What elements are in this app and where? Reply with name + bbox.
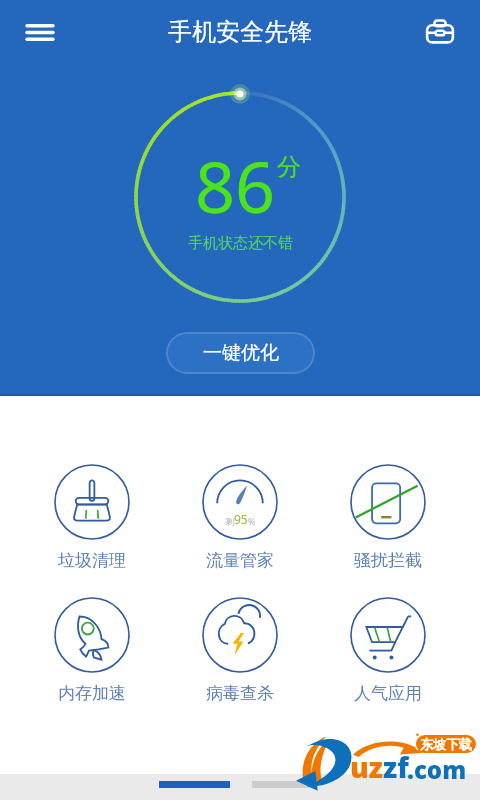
staticText: 东坡下载 <box>420 736 472 752</box>
button[interactable]: 垃圾清理 <box>30 464 154 574</box>
staticText: 病毒查杀 <box>206 683 274 704</box>
button[interactable]: 病毒查杀 <box>178 597 302 707</box>
staticText: 骚扰拦截 <box>354 550 422 571</box>
button[interactable]: 内存加速 <box>30 597 154 707</box>
staticText: 流量管家 <box>206 550 274 571</box>
staticText: 86 <box>195 138 276 233</box>
button[interactable]: 一键优化 <box>166 332 315 374</box>
staticText: 手机状态还不错 <box>188 234 293 253</box>
staticText: 手机安全先锋 <box>168 17 312 47</box>
staticText: zf <box>383 748 409 786</box>
staticText: .com <box>407 753 467 786</box>
staticText: uz <box>350 748 383 786</box>
button[interactable]: 骚扰拦截 <box>326 464 450 574</box>
button[interactable]: Toolbox <box>399 0 480 64</box>
staticText: 垃圾清理 <box>58 550 126 571</box>
staticText: 剩 <box>225 516 234 527</box>
staticText: 内存加速 <box>58 683 126 704</box>
staticText: 人气应用 <box>354 683 422 704</box>
staticText: 95 <box>234 511 248 527</box>
button[interactable]: Menu <box>0 0 80 64</box>
staticText: 分 <box>277 152 301 182</box>
staticText: % <box>248 515 256 527</box>
staticText: 一键优化 <box>203 341 279 365</box>
button[interactable]: 人气应用 <box>326 597 450 707</box>
button[interactable]: 剩 <box>178 464 302 574</box>
